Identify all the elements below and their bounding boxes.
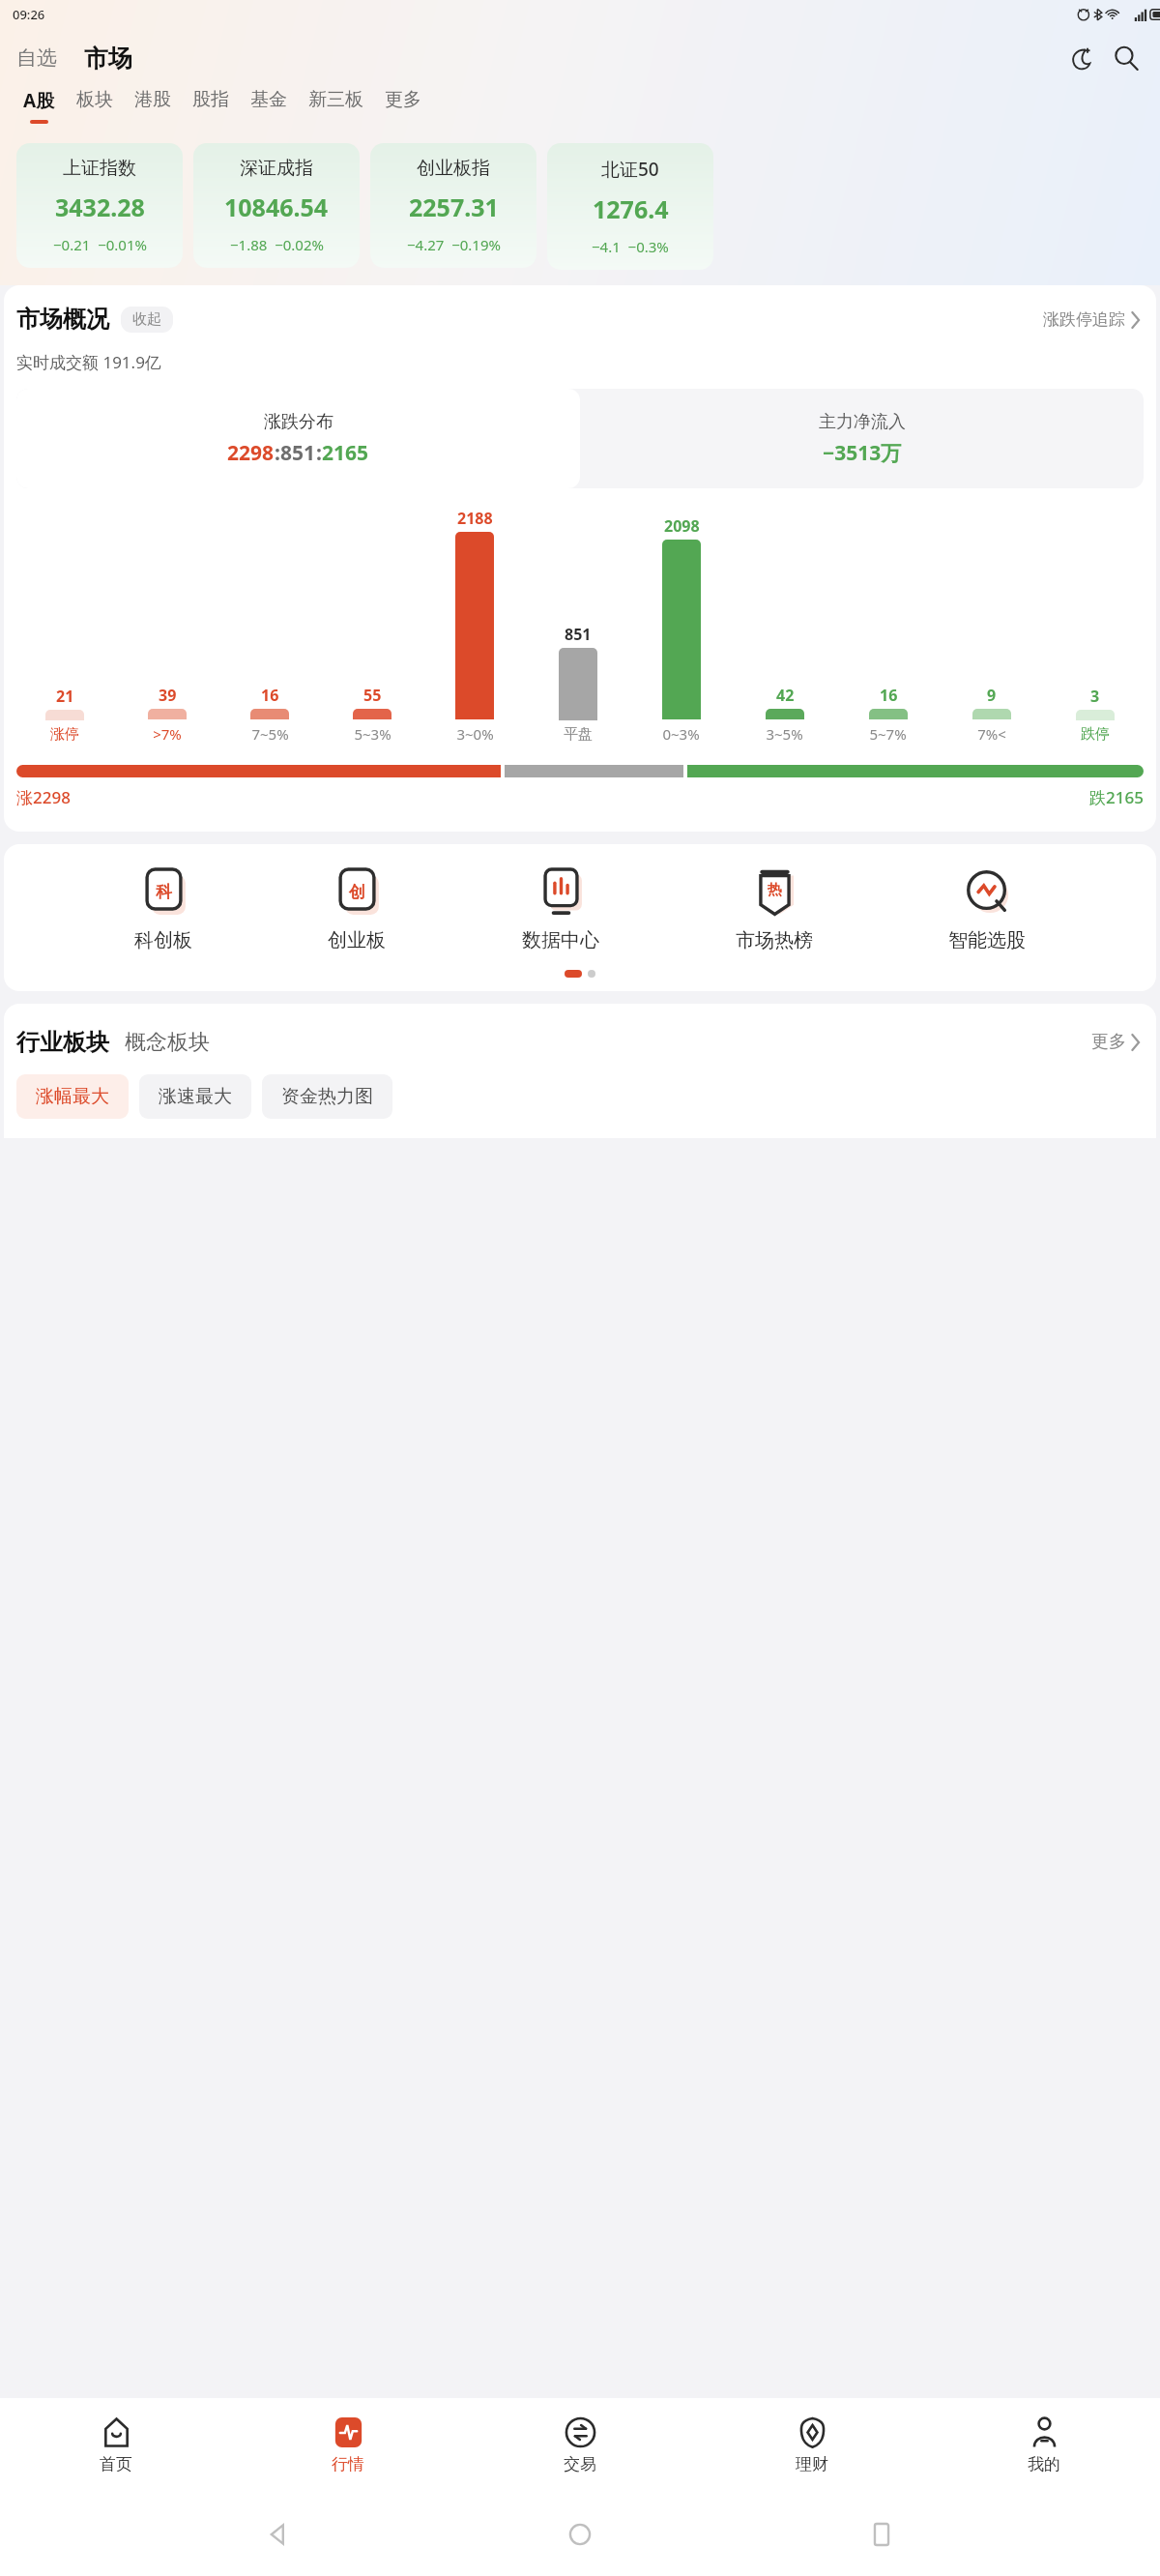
button[interactable]: Back: [255, 2511, 302, 2558]
staticText: 涨跌分布: [264, 411, 333, 433]
staticText: 3: [1090, 686, 1100, 707]
button[interactable]: 行情: [232, 2398, 464, 2493]
button[interactable]: 科: [129, 869, 198, 952]
button[interactable]: 资金热力图: [262, 1074, 392, 1119]
staticText: 2298: [227, 439, 275, 467]
staticText: −3513万: [823, 439, 902, 467]
staticText: 2188: [457, 508, 493, 529]
staticText: 上证指数: [63, 157, 136, 180]
staticText: 涨跌停追踪: [1043, 309, 1125, 330]
staticText: 市场热榜: [736, 928, 813, 952]
button[interactable]: 16: [218, 502, 321, 744]
button[interactable]: 数据中心: [516, 869, 605, 952]
button[interactable]: 我的: [928, 2398, 1160, 2493]
staticText: −0.21 −0.01%: [53, 235, 147, 254]
staticText: 更多: [385, 88, 421, 111]
staticText: 0~3%: [662, 724, 700, 744]
button[interactable]: 21: [14, 503, 116, 744]
button[interactable]: 收起: [121, 307, 173, 333]
staticText: 跌2165: [1089, 786, 1144, 808]
button[interactable]: 自选: [13, 45, 61, 71]
staticText: 创: [349, 882, 365, 902]
staticText: 港股: [134, 88, 171, 111]
button[interactable]: 基金: [240, 88, 298, 122]
staticText: 21: [56, 686, 74, 707]
staticText: 交易: [564, 2454, 596, 2474]
button[interactable]: 市场: [80, 44, 136, 73]
staticText: 3~0%: [456, 724, 494, 744]
button[interactable]: 主力净流入: [580, 389, 1144, 488]
staticText: 9: [987, 685, 997, 706]
staticText: :: [316, 439, 322, 467]
button[interactable]: Home: [557, 2511, 603, 2558]
button[interactable]: 2098: [629, 502, 733, 744]
button[interactable]: 涨跌分布: [16, 389, 580, 488]
staticText: 新三板: [308, 88, 363, 111]
button[interactable]: 851: [526, 503, 629, 744]
staticText: 2257.31: [409, 190, 499, 223]
staticText: 智能选股: [948, 928, 1026, 952]
staticText: 851: [280, 439, 316, 467]
button[interactable]: 39: [116, 502, 218, 744]
button[interactable]: 首页: [0, 2398, 232, 2493]
button[interactable]: 涨跌停追踪: [1039, 306, 1144, 334]
staticText: 理财: [796, 2454, 828, 2474]
staticText: 市场: [84, 44, 132, 73]
button[interactable]: 更多: [374, 88, 432, 122]
button[interactable]: 创: [322, 869, 391, 952]
staticText: 自选: [16, 45, 57, 71]
staticText: −1.88 −0.02%: [230, 235, 324, 254]
button[interactable]: 港股: [124, 88, 182, 122]
staticText: 首页: [100, 2454, 132, 2474]
button[interactable]: 涨幅最大: [16, 1074, 129, 1119]
button[interactable]: 55: [321, 502, 423, 744]
staticText: 涨2298: [16, 786, 71, 808]
staticText: 1276.4: [593, 192, 669, 225]
button[interactable]: 3: [1043, 503, 1146, 744]
staticText: −4.27 −0.19%: [407, 235, 501, 254]
button[interactable]: 9: [940, 502, 1043, 744]
staticText: 基金: [250, 88, 287, 111]
staticText: 42: [776, 685, 795, 706]
button[interactable]: 北证50: [547, 143, 713, 270]
staticText: 深证成指: [240, 157, 313, 180]
staticText: 平盘: [564, 725, 593, 744]
button[interactable]: 智能选股: [942, 869, 1031, 952]
staticText: 16: [261, 685, 279, 706]
staticText: 5~7%: [869, 724, 907, 744]
staticText: A股: [23, 88, 55, 113]
button[interactable]: 板块: [66, 88, 124, 122]
button[interactable]: 交易: [464, 2398, 696, 2493]
button[interactable]: Recents: [858, 2511, 905, 2558]
button[interactable]: 概念板块: [125, 1029, 210, 1056]
staticText: 收起: [132, 310, 161, 329]
button[interactable]: A股: [13, 88, 66, 124]
staticText: :: [275, 439, 280, 467]
staticText: 行情: [332, 2454, 364, 2474]
button[interactable]: 2188: [423, 502, 526, 744]
staticText: 55: [363, 685, 382, 706]
button[interactable]: 深证成指: [193, 143, 360, 268]
staticText: 北证50: [601, 157, 659, 182]
staticText: 热: [768, 881, 782, 899]
staticText: 涨停: [50, 725, 79, 744]
staticText: 科: [156, 882, 172, 902]
button[interactable]: Search: [1109, 41, 1144, 75]
button[interactable]: 创业板指: [370, 143, 536, 268]
button[interactable]: 涨速最大: [139, 1074, 251, 1119]
button[interactable]: 42: [733, 502, 836, 744]
staticText: 涨幅最大: [36, 1085, 109, 1108]
button[interactable]: 热: [730, 869, 819, 952]
staticText: 概念板块: [125, 1029, 210, 1056]
button[interactable]: 股指: [182, 88, 240, 122]
button[interactable]: 新三板: [298, 88, 374, 122]
button[interactable]: 理财: [696, 2398, 928, 2493]
button[interactable]: 上证指数: [16, 143, 183, 268]
button[interactable]: 16: [836, 502, 940, 744]
staticText: >7%: [153, 724, 182, 744]
staticText: 5~3%: [354, 724, 391, 744]
button[interactable]: Night mode: [1062, 41, 1097, 75]
staticText: 行业板块: [16, 1028, 109, 1057]
button[interactable]: 行业板块: [16, 1028, 109, 1057]
button[interactable]: 更多: [1087, 1027, 1144, 1057]
